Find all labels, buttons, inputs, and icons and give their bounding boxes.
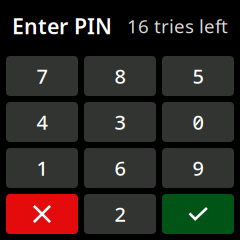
button[interactable]: 1 bbox=[6, 148, 78, 188]
button[interactable]: 2 bbox=[84, 194, 156, 234]
button[interactable]: 6 bbox=[84, 148, 156, 188]
staticText: 6 bbox=[114, 155, 125, 181]
staticText: 8 bbox=[114, 63, 125, 89]
staticText: 4 bbox=[36, 109, 47, 135]
button[interactable]: 5 bbox=[162, 56, 234, 96]
button[interactable]: 0 bbox=[162, 102, 234, 142]
staticText: 16 tries left bbox=[127, 14, 228, 38]
button[interactable]: 4 bbox=[6, 102, 78, 142]
button[interactable]: 3 bbox=[84, 102, 156, 142]
button[interactable]: Confirm bbox=[162, 194, 234, 234]
staticText: 7 bbox=[36, 63, 47, 89]
staticText: 3 bbox=[114, 109, 125, 135]
staticText: 1 bbox=[36, 155, 47, 181]
button[interactable]: 9 bbox=[162, 148, 234, 188]
staticText: 2 bbox=[114, 201, 125, 227]
staticText: 5 bbox=[192, 63, 203, 89]
button[interactable]: 8 bbox=[84, 56, 156, 96]
staticText: Enter PIN bbox=[12, 12, 112, 40]
staticText: 0 bbox=[192, 109, 203, 135]
button[interactable]: 7 bbox=[6, 56, 78, 96]
staticText: 9 bbox=[192, 155, 203, 181]
button[interactable]: Cancel bbox=[6, 194, 78, 234]
